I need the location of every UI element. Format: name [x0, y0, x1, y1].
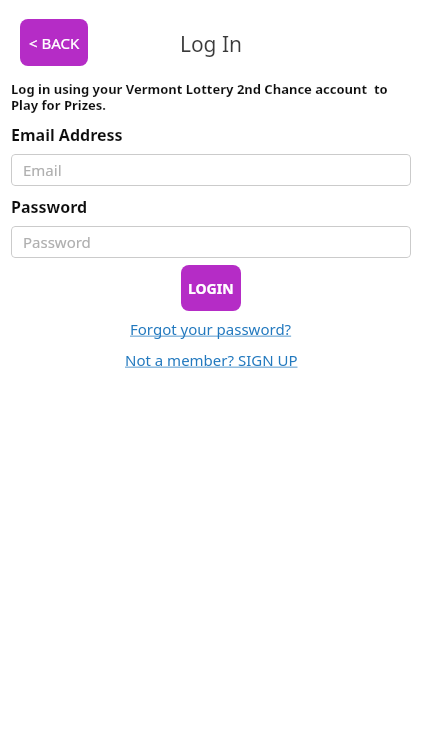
staticText: Email Address — [11, 124, 123, 146]
button[interactable]: Email — [11, 154, 411, 186]
staticText: < BACK — [29, 33, 80, 53]
button[interactable]: Forgot your password? — [128, 318, 294, 340]
staticText: Forgot your password? — [130, 319, 292, 339]
staticText: Password — [23, 232, 91, 252]
staticText: Not a member? SIGN UP — [125, 350, 298, 370]
button[interactable]: Back — [20, 19, 88, 66]
button[interactable]: Password — [11, 226, 411, 258]
staticText: Password — [11, 196, 88, 218]
staticText: Log In — [0, 30, 422, 59]
button[interactable]: Not a member? SIGN UP — [123, 349, 300, 371]
button[interactable]: LOGIN — [181, 265, 241, 311]
staticText: LOGIN — [188, 279, 234, 298]
staticText: Log in using your Vermont Lottery 2nd Ch… — [11, 80, 411, 113]
staticText: Email — [23, 160, 62, 180]
